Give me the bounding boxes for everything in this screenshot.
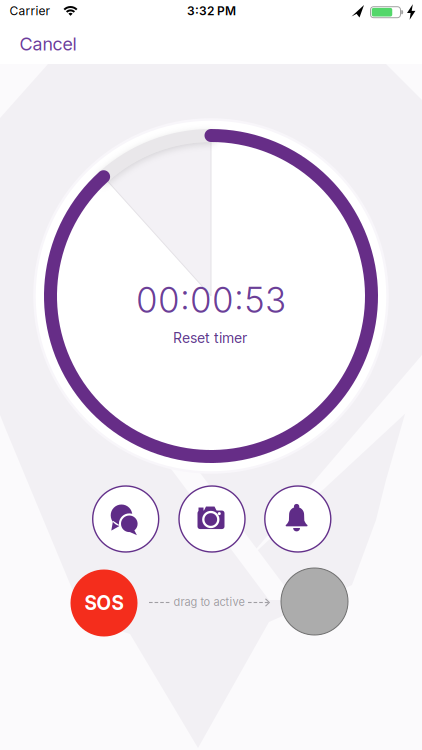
staticText: drag to active bbox=[173, 595, 244, 608]
staticText: 00:00:53 bbox=[136, 279, 286, 321]
button[interactable]: Drag target to activate bbox=[281, 568, 348, 635]
button[interactable]: Reset timer bbox=[173, 330, 247, 346]
button[interactable]: Camera bbox=[179, 486, 245, 552]
button[interactable]: Alert bbox=[265, 486, 331, 552]
staticText: Reset timer bbox=[173, 330, 247, 346]
staticText: Cancel bbox=[19, 33, 76, 55]
button[interactable]: Cancel bbox=[19, 33, 76, 55]
button[interactable]: SOS bbox=[70, 569, 137, 636]
staticText: 3:32 PM bbox=[187, 4, 236, 18]
staticText: Carrier bbox=[9, 4, 50, 18]
staticText: SOS bbox=[84, 592, 123, 614]
button[interactable]: Messages bbox=[93, 486, 159, 552]
